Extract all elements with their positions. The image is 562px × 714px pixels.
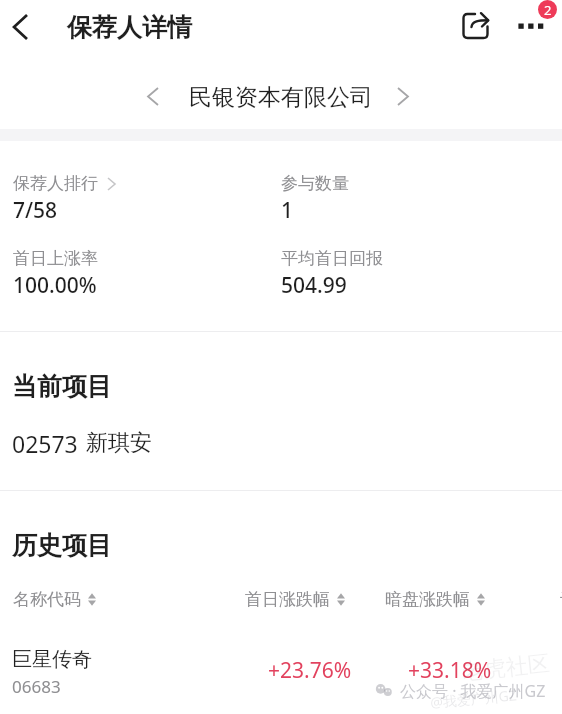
staticText: 02573 <box>12 428 78 459</box>
staticText: 历史项目 <box>12 530 112 561</box>
staticText: 平均首日回报 <box>281 248 383 269</box>
staticText: @我爱广州GZ <box>429 685 518 712</box>
button[interactable]: Back <box>0 0 50 54</box>
button[interactable]: 认购倍数 <box>560 589 562 610</box>
staticText: 当前项目 <box>12 371 112 402</box>
button[interactable]: 参与数量 <box>281 173 349 225</box>
staticText: +23.76% <box>268 656 352 685</box>
staticText: 民银资本有限公司 <box>189 83 373 112</box>
staticText: 认购倍数 <box>560 589 562 610</box>
staticText: 504.99 <box>281 271 347 300</box>
staticText: 老虎社区 <box>461 649 551 686</box>
staticText: +33.18% <box>408 656 492 685</box>
staticText: 巨星传奇 <box>12 647 92 672</box>
staticText: 首日上涨率 <box>13 248 98 269</box>
staticText: 参与数量 <box>281 173 349 194</box>
button[interactable]: More options <box>508 4 552 48</box>
staticText: 7/58 <box>13 196 58 225</box>
staticText: 100.00% <box>13 271 97 300</box>
staticText: 名称代码 <box>13 589 81 610</box>
staticText: 保荐人详情 <box>67 12 192 43</box>
staticText: 新琪安 <box>86 429 152 457</box>
button[interactable]: Share <box>455 3 499 47</box>
staticText: 保荐人排行 <box>13 173 98 194</box>
staticText: 2 <box>544 1 552 19</box>
button[interactable]: 02573 <box>0 422 562 462</box>
button[interactable]: 名称代码 <box>13 589 96 610</box>
button[interactable]: 首日涨跌幅 <box>245 589 345 610</box>
button[interactable]: 保荐人排行 <box>13 173 115 225</box>
staticText: 公众号 · 我爱广州GZ <box>400 680 546 702</box>
button[interactable]: 首日上涨率 <box>13 248 98 300</box>
staticText: 首日涨跌幅 <box>245 589 330 610</box>
button[interactable]: 暗盘涨跌幅 <box>385 589 485 610</box>
button[interactable]: Next sponsor <box>390 78 416 114</box>
staticText: 暗盘涨跌幅 <box>385 589 470 610</box>
staticText: 1 <box>281 196 294 225</box>
button[interactable]: Previous sponsor <box>140 78 166 114</box>
staticText: 06683 <box>12 675 61 698</box>
button[interactable]: 平均首日回报 <box>281 248 383 300</box>
button[interactable]: 巨星传奇 <box>0 642 562 706</box>
